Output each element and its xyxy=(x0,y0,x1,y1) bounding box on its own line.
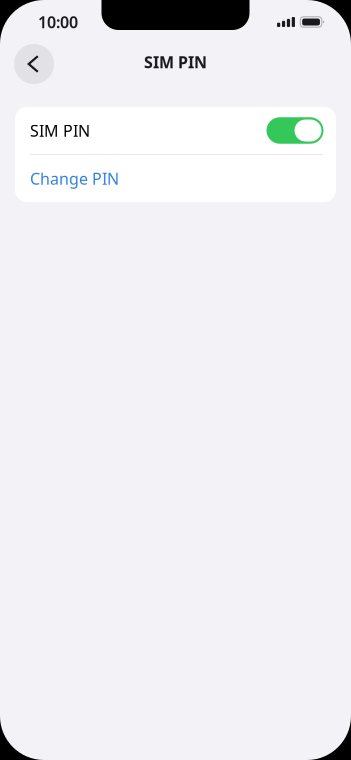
staticText: 10:00 xyxy=(38,11,78,33)
staticText: Change PIN xyxy=(30,168,119,189)
staticText: SIM PIN xyxy=(30,120,90,141)
button[interactable]: Change PIN xyxy=(15,155,336,202)
staticText: SIM PIN xyxy=(144,51,207,73)
button[interactable]: SIM PIN xyxy=(15,107,336,154)
button[interactable]: Back xyxy=(14,44,54,84)
